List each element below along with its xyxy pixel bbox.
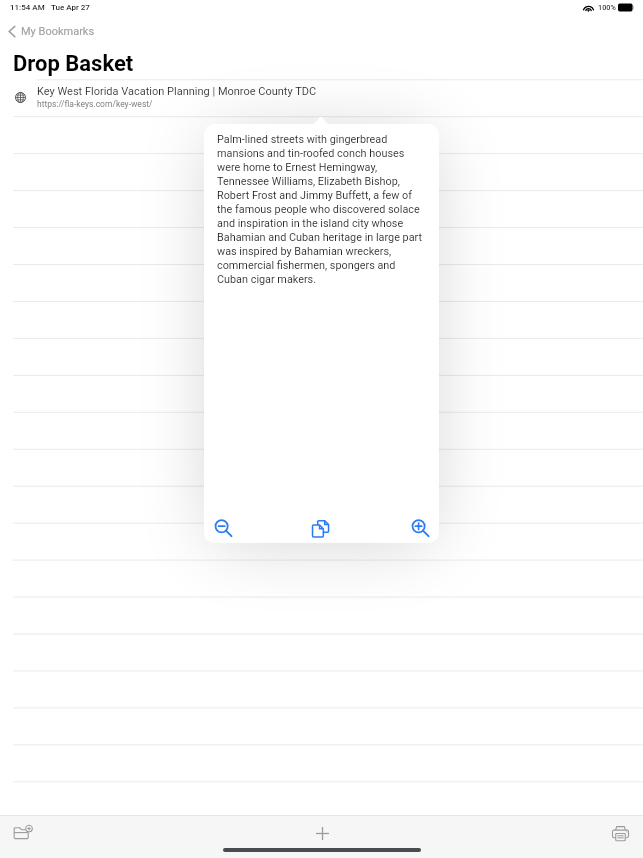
- staticText: Palm-lined streets with gingerbread mans…: [217, 132, 426, 286]
- staticText: Key West Florida Vacation Planning | Mon…: [37, 85, 317, 98]
- staticText: https://fla-keys.com/key-west/: [37, 99, 153, 109]
- staticText: 100%: [598, 3, 616, 12]
- button[interactable]: Zoom in: [406, 514, 435, 543]
- button[interactable]: My Bookmarks: [8, 21, 95, 41]
- staticText: 11:54 AM: [10, 3, 45, 12]
- staticText: Tue Apr 27: [51, 3, 90, 12]
- staticText: Drop Basket: [13, 51, 134, 77]
- button[interactable]: Zoom out: [209, 514, 238, 543]
- button[interactable]: Add: [308, 819, 336, 847]
- button[interactable]: New folder: [9, 819, 37, 847]
- button[interactable]: Copy: [306, 514, 335, 543]
- button[interactable]: Key West Florida Vacation Planning | Mon…: [0, 80, 643, 115]
- button[interactable]: Print: [606, 819, 634, 847]
- staticText: My Bookmarks: [21, 25, 95, 38]
